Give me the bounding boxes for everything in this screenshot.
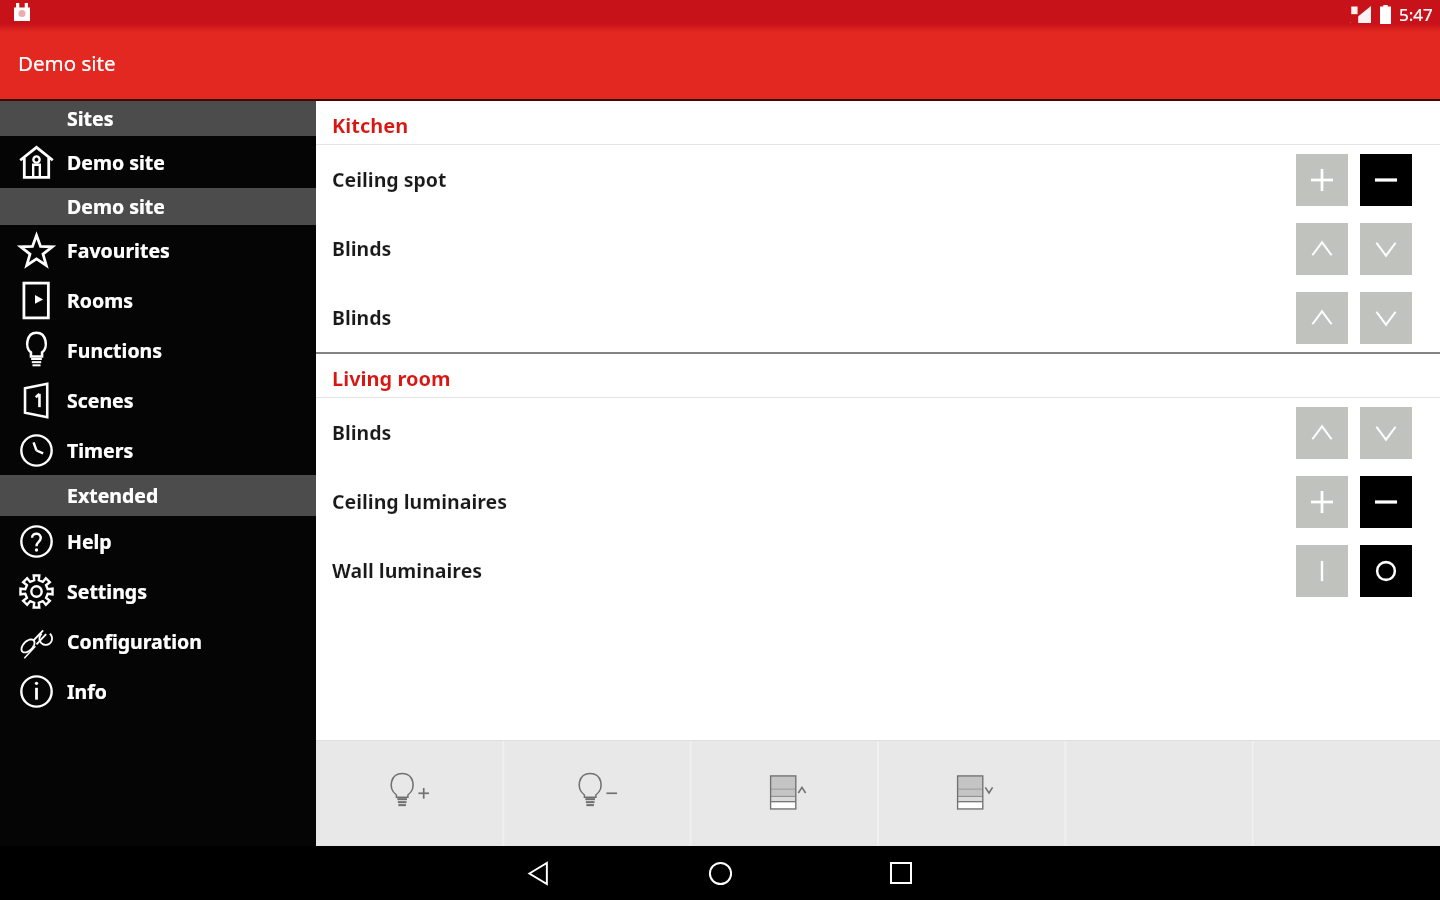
button[interactable]: Functions: [0, 325, 316, 375]
button[interactable]: Timers: [0, 425, 316, 475]
button[interactable]: Lower: [1360, 223, 1412, 275]
staticText: Favourites: [67, 237, 170, 264]
button[interactable]: Settings: [0, 566, 316, 616]
staticText: Settings: [67, 578, 147, 605]
button[interactable]: On: [1296, 545, 1348, 597]
button[interactable]: Raise: [1296, 292, 1348, 344]
staticText: Blinds: [332, 235, 392, 262]
button[interactable]: Help: [0, 516, 316, 566]
button[interactable]: Scenes: [0, 375, 316, 425]
button[interactable]: Wall luminaires: [316, 536, 1440, 605]
button[interactable]: Decrease: [1360, 154, 1412, 206]
staticText: Ceiling luminaires: [332, 488, 507, 515]
button[interactable]: Configuration: [0, 616, 316, 666]
button[interactable]: Blinds up: [692, 740, 879, 846]
button[interactable]: Blinds: [316, 398, 1440, 467]
staticText: Wall luminaires: [332, 557, 483, 584]
button[interactable]: Rooms: [0, 275, 316, 325]
button[interactable]: Lights on: [316, 740, 504, 846]
staticText: Blinds: [332, 304, 392, 331]
button[interactable]: Increase: [1296, 154, 1348, 206]
button[interactable]: Ceiling spot: [316, 145, 1440, 214]
button[interactable]: Raise: [1296, 223, 1348, 275]
button[interactable]: Off: [1360, 545, 1412, 597]
staticText: Rooms: [67, 287, 133, 314]
button[interactable]: Lower: [1360, 407, 1412, 459]
staticText: Configuration: [67, 628, 202, 655]
button[interactable]: Ceiling luminaires: [316, 467, 1440, 536]
staticText: Blinds: [332, 419, 392, 446]
button[interactable]: Favourites: [0, 225, 316, 275]
staticText: Living room: [332, 365, 451, 392]
button[interactable]: Demo site: [0, 136, 316, 188]
staticText: Timers: [67, 437, 134, 464]
button[interactable]: Lower: [1360, 292, 1412, 344]
staticText: 5:47: [1399, 3, 1433, 26]
button[interactable]: Extended: [0, 475, 316, 516]
staticText: Extended: [67, 482, 159, 509]
button[interactable]: Lights off: [504, 740, 692, 846]
button[interactable]: Recent apps: [874, 846, 928, 900]
staticText: Functions: [67, 337, 163, 364]
button[interactable]: Demo site: [0, 188, 316, 225]
staticText: Info: [67, 678, 107, 705]
button[interactable]: Back: [512, 846, 566, 900]
button[interactable]: Raise: [1296, 407, 1348, 459]
staticText: Demo site: [67, 149, 165, 176]
button[interactable]: Increase: [1296, 476, 1348, 528]
button[interactable]: Sites: [0, 101, 316, 136]
button[interactable]: Home: [693, 846, 747, 900]
staticText: Demo site: [67, 193, 165, 220]
staticText: Scenes: [67, 387, 134, 414]
button[interactable]: Blinds down: [879, 740, 1066, 846]
button[interactable]: Blinds: [316, 214, 1440, 283]
button[interactable]: Blinds: [316, 283, 1440, 352]
staticText: Demo site: [18, 49, 116, 77]
staticText: Kitchen: [332, 112, 409, 139]
staticText: Help: [67, 528, 112, 555]
button[interactable]: Decrease: [1360, 476, 1412, 528]
staticText: Sites: [67, 105, 114, 132]
staticText: Ceiling spot: [332, 166, 447, 193]
button[interactable]: Info: [0, 666, 316, 716]
